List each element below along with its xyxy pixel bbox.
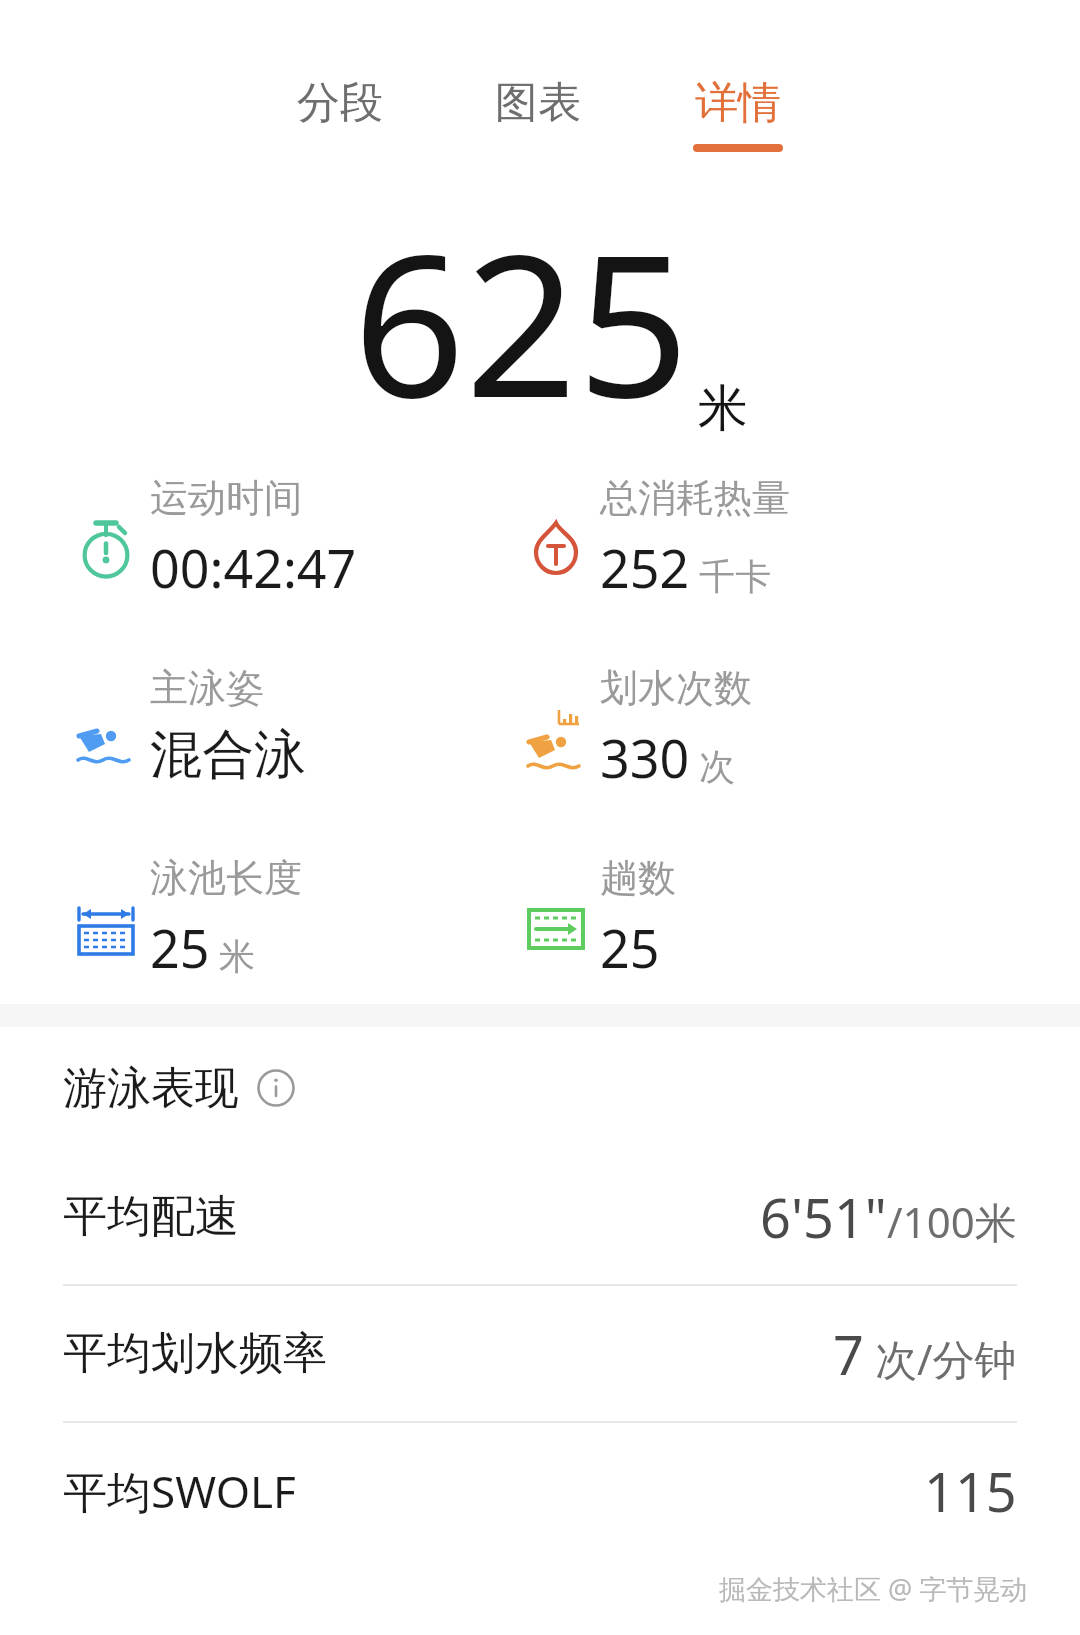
button[interactable]: 运动时间 [0,460,500,607]
button[interactable]: 趟数 [500,840,1080,987]
staticText: 主泳姿 [150,664,264,712]
staticText: 混合泳 [150,722,306,788]
button[interactable]: 图表 [483,72,593,156]
staticText: 趟数 [600,854,676,902]
staticText: 平均划水频率 [63,1326,327,1381]
staticText: 6'51" [760,1180,887,1254]
staticText: 25 [600,912,660,983]
staticText: 次 [699,744,735,789]
staticText: 千卡 [699,554,771,599]
staticText: 运动时间 [150,474,302,522]
button[interactable]: 泳池长度 [0,840,500,987]
staticText: 330 [600,722,690,793]
staticText: 掘金技术社区 @ 字节晃动 [719,1570,1028,1607]
button[interactable]: 平均配速 [0,1149,1080,1284]
staticText: 图表 [495,76,581,130]
staticText: 115 [924,1454,1017,1528]
staticText: 详情 [695,76,781,130]
button[interactable]: 总消耗热量 [500,460,1080,607]
button[interactable]: 分段 [285,72,395,156]
staticText: 625 [353,187,690,454]
staticText: 平均配速 [63,1189,239,1244]
staticText: 00:42:47 [150,532,357,603]
staticText: 米 [219,934,255,979]
button[interactable]: 划水次数 [500,650,1080,797]
staticText: 平均SWOLF [63,1461,296,1521]
button[interactable]: 平均SWOLF [0,1423,1080,1558]
staticText: 次/分钟 [864,1330,1017,1387]
button[interactable]: 详情 [681,72,795,156]
button[interactable]: 说明 [257,1069,295,1107]
staticText: 分段 [297,76,383,130]
staticText: 米 [698,377,748,440]
staticText: 泳池长度 [150,854,302,902]
staticText: 252 [600,532,690,603]
staticText: 25 [150,912,210,983]
staticText: /100米 [887,1193,1017,1250]
button[interactable]: 平均划水频率 [0,1286,1080,1421]
staticText: 总消耗热量 [600,474,790,522]
staticText: 游泳表现 [63,1061,239,1116]
button[interactable]: 主泳姿 [0,650,500,797]
staticText: 7 [833,1317,864,1391]
staticText: 划水次数 [600,664,752,712]
